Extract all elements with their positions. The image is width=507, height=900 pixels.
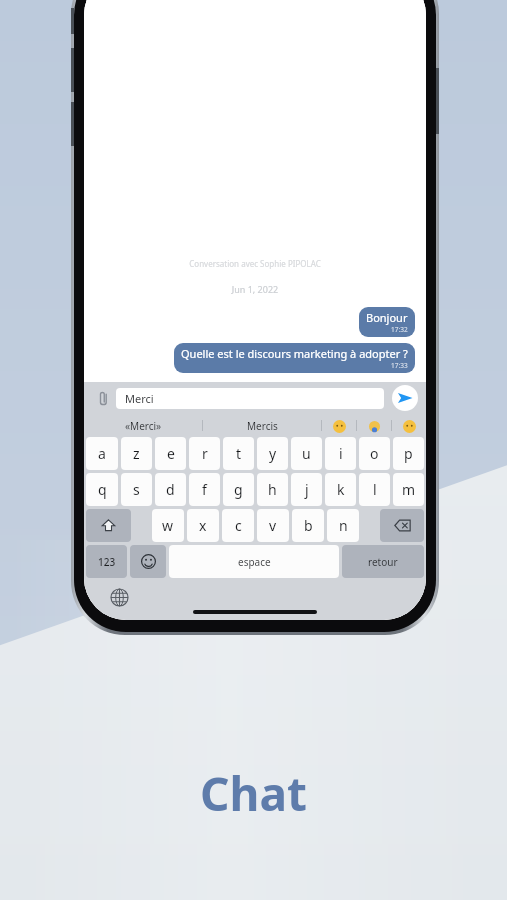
button[interactable]: o — [359, 437, 390, 470]
staticText: 123 — [98, 555, 116, 569]
button[interactable]: a — [86, 437, 118, 470]
staticText: espace — [238, 555, 271, 569]
staticText: e — [167, 444, 175, 463]
staticText: «Merci» — [125, 419, 162, 433]
staticText: x — [199, 516, 207, 535]
staticText: h — [268, 480, 277, 499]
button[interactable]: c — [222, 509, 254, 542]
button[interactable]: espace — [169, 545, 339, 578]
button[interactable]: z — [121, 437, 152, 470]
button[interactable]: Send — [392, 385, 418, 411]
button[interactable]: x — [187, 509, 219, 542]
staticText: g — [234, 480, 243, 499]
button[interactable]: i — [325, 437, 356, 470]
staticText: w — [162, 516, 174, 535]
button[interactable]: Emoji — [130, 545, 166, 578]
button[interactable]: d — [155, 473, 186, 506]
button[interactable]: Emoji suggestion — [401, 418, 417, 434]
staticText: Mercis — [247, 419, 278, 433]
button[interactable]: Emoji suggestion — [331, 418, 347, 434]
button[interactable]: «Merci» — [84, 414, 202, 437]
staticText: b — [304, 516, 313, 535]
button[interactable]: retour — [342, 545, 424, 578]
staticText: u — [302, 444, 311, 463]
button[interactable]: q — [86, 473, 118, 506]
staticText: retour — [368, 555, 398, 569]
button[interactable]: y — [257, 437, 288, 470]
staticText: d — [166, 480, 175, 499]
button[interactable]: w — [152, 509, 184, 542]
button[interactable]: j — [291, 473, 322, 506]
button[interactable]: f — [189, 473, 220, 506]
button[interactable]: g — [223, 473, 254, 506]
button[interactable]: Backspace — [380, 509, 424, 542]
button[interactable]: t — [223, 437, 254, 470]
staticText: p — [404, 444, 413, 463]
button[interactable]: l — [359, 473, 390, 506]
staticText: s — [133, 480, 140, 499]
button[interactable]: e — [155, 437, 186, 470]
button[interactable]: u — [291, 437, 322, 470]
staticText: t — [236, 444, 242, 463]
staticText: f — [202, 480, 207, 499]
staticText: 17:33 — [391, 361, 408, 370]
staticText: q — [98, 480, 107, 499]
button[interactable]: Emoji suggestion — [366, 418, 382, 434]
button[interactable]: h — [257, 473, 288, 506]
button[interactable]: r — [189, 437, 220, 470]
staticText: Conversation avec Sophie PIPOLAC — [84, 258, 426, 269]
staticText: n — [339, 516, 348, 535]
button[interactable]: p — [393, 437, 424, 470]
staticText: Chat — [200, 762, 307, 825]
staticText: m — [402, 480, 416, 499]
button[interactable]: Shift — [86, 509, 131, 542]
staticText: l — [373, 480, 377, 499]
staticText: j — [305, 480, 309, 499]
staticText: v — [269, 516, 277, 535]
button[interactable]: v — [257, 509, 289, 542]
button[interactable]: s — [121, 473, 152, 506]
staticText: o — [370, 444, 379, 463]
button[interactable]: n — [327, 509, 359, 542]
staticText: i — [339, 444, 343, 463]
button[interactable]: Bonjour — [359, 307, 415, 337]
staticText: a — [98, 444, 106, 463]
staticText: Jun 1, 2022 — [84, 283, 426, 295]
staticText: r — [202, 444, 208, 463]
button[interactable]: k — [325, 473, 356, 506]
staticText: c — [235, 516, 242, 535]
staticText: 17:32 — [391, 325, 408, 334]
button[interactable]: Mercis — [203, 414, 321, 437]
button[interactable]: 123 — [86, 545, 127, 578]
staticText: y — [269, 444, 277, 463]
staticText: Bonjour — [366, 310, 408, 325]
button[interactable]: Attach file — [92, 387, 114, 409]
staticText: Merci — [125, 391, 154, 406]
staticText: k — [337, 480, 345, 499]
staticText: z — [133, 444, 140, 463]
button[interactable]: b — [292, 509, 324, 542]
button[interactable]: m — [393, 473, 424, 506]
button[interactable]: Change keyboard language — [108, 586, 130, 608]
button[interactable]: Merci — [116, 388, 384, 409]
button[interactable]: Quelle est le discours marketing à adopt… — [174, 343, 415, 373]
staticText: Quelle est le discours marketing à adopt… — [181, 346, 408, 361]
